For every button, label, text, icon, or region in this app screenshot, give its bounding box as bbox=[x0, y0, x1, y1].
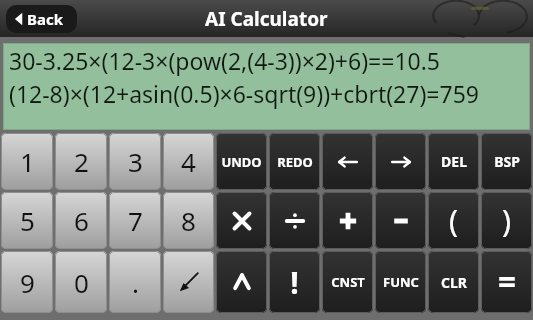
button[interactable]: Plus bbox=[322, 192, 373, 249]
button[interactable]: 5 bbox=[1, 192, 53, 249]
button[interactable]: 3 bbox=[109, 133, 161, 190]
button[interactable]: Move cursor right bbox=[375, 133, 426, 190]
staticText: Back bbox=[27, 9, 64, 29]
staticText: FUNC bbox=[383, 273, 419, 291]
button[interactable]: Minus bbox=[375, 192, 426, 249]
button[interactable]: UNDO bbox=[216, 133, 267, 190]
staticText: 6 bbox=[74, 203, 89, 238]
button[interactable]: ( bbox=[428, 192, 479, 249]
button[interactable]: REDO bbox=[269, 133, 320, 190]
staticText: 8 bbox=[181, 203, 196, 238]
staticText: BSP bbox=[494, 152, 520, 171]
staticText: DEL bbox=[441, 152, 467, 171]
staticText: 2 bbox=[74, 144, 89, 179]
button[interactable]: Back bbox=[6, 5, 77, 33]
button[interactable]: Move cursor left bbox=[322, 133, 373, 190]
staticText: (12-8)×(12+asin(0.5)×6-sqrt(9))+cbrt(27)… bbox=[9, 78, 479, 109]
button[interactable]: Enter bbox=[163, 251, 214, 313]
staticText: REDO bbox=[277, 153, 313, 171]
button[interactable]: . bbox=[109, 251, 161, 313]
staticText: 30-3.25×(12-3×(pow(2,(4-3))×2)+6)==10.5 bbox=[9, 45, 441, 76]
button[interactable]: BSP bbox=[481, 133, 532, 190]
staticText: . bbox=[132, 265, 139, 300]
staticText: 5 bbox=[20, 203, 35, 238]
staticText: CNST bbox=[331, 273, 365, 291]
button[interactable]: 8 bbox=[163, 192, 214, 249]
button[interactable]: 6 bbox=[55, 192, 107, 249]
staticText: ( bbox=[449, 200, 458, 241]
staticText: 4 bbox=[181, 144, 196, 179]
button[interactable]: ! bbox=[269, 251, 320, 313]
staticText: 3 bbox=[128, 144, 143, 179]
button[interactable]: 30-3.25×(12-3×(pow(2,(4-3))×2)+6)==10.5 bbox=[3, 43, 530, 130]
button[interactable]: FUNC bbox=[375, 251, 426, 313]
button[interactable]: 9 bbox=[1, 251, 53, 313]
staticText: CLR bbox=[441, 273, 467, 292]
staticText: UNDO bbox=[221, 153, 262, 171]
button[interactable]: Multiply bbox=[216, 192, 267, 249]
button[interactable]: Equals bbox=[481, 251, 532, 313]
button[interactable]: Divide bbox=[269, 192, 320, 249]
staticText: 1 bbox=[20, 144, 35, 179]
staticText: 9 bbox=[20, 265, 35, 300]
button[interactable]: ) bbox=[481, 192, 532, 249]
button[interactable]: Power bbox=[216, 251, 267, 313]
button[interactable]: 2 bbox=[55, 133, 107, 190]
button[interactable]: 1 bbox=[1, 133, 53, 190]
staticText: ! bbox=[290, 262, 299, 303]
staticText: 7 bbox=[128, 203, 143, 238]
button[interactable]: CLR bbox=[428, 251, 479, 313]
staticText: ) bbox=[502, 200, 511, 241]
button[interactable]: DEL bbox=[428, 133, 479, 190]
button[interactable]: CNST bbox=[322, 251, 373, 313]
staticText: 0 bbox=[74, 265, 89, 300]
button[interactable]: 4 bbox=[163, 133, 214, 190]
button[interactable]: 7 bbox=[109, 192, 161, 249]
button[interactable]: 0 bbox=[55, 251, 107, 313]
staticText: AI Calculator bbox=[205, 6, 328, 32]
